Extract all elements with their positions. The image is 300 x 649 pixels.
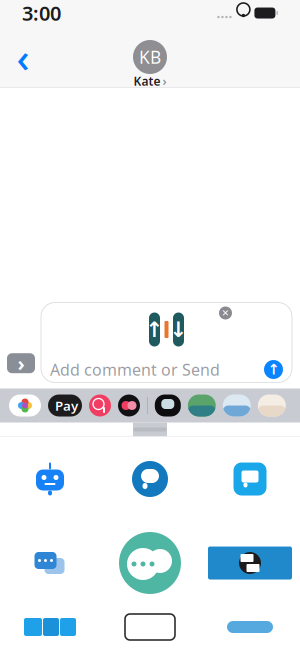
button[interactable]: Send [264,360,283,379]
button[interactable]: Recent photo [258,394,286,416]
button[interactable]: Bubbles sticker app [0,521,100,605]
staticText: Pay [52,397,78,414]
button[interactable]: Photos [9,394,41,416]
button[interactable]: Message sticker app [200,437,300,521]
button[interactable]: Apple Pay [48,394,82,416]
button[interactable]: Blue chat app [200,521,300,605]
button[interactable]: App Store [89,394,111,416]
button[interactable]: KB [133,40,167,74]
button[interactable]: Robot sticker app [0,437,100,521]
button[interactable]: Digital Touch [118,394,140,416]
staticText: ↓ [169,317,187,342]
staticText: ↑ [267,361,279,378]
button[interactable]: Back [8,35,38,79]
button[interactable]: Recent photo [223,394,251,416]
button[interactable]: Sticker app [100,605,200,649]
button[interactable]: Expand apps [7,350,35,382]
staticText: Kate [133,73,160,89]
button[interactable]: Recent photo [188,394,216,416]
button[interactable]: Memoji Stickers [155,394,181,416]
staticText: Add comment or Send [50,359,220,380]
staticText: ✕ [221,308,229,318]
button[interactable]: Sticker app [0,605,100,649]
staticText: › [162,73,166,89]
staticText: ‹ [16,30,29,83]
staticText: › [17,350,24,376]
staticText: 3:00 [22,0,61,26]
button[interactable]: Chat sticker app [100,437,200,521]
staticText: KB [139,45,161,68]
button[interactable]: Green chat app [100,521,200,605]
staticText: ↑ [145,317,163,342]
staticText: .... [216,4,232,22]
button[interactable]: Sticker app [200,605,300,649]
